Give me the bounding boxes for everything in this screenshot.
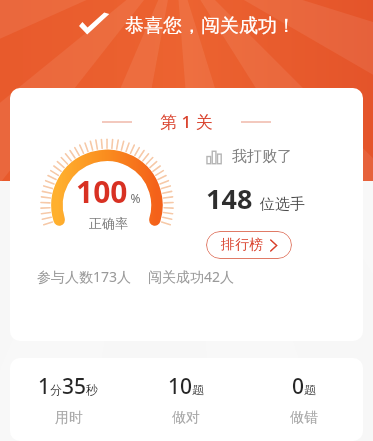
staticText: 做错 <box>290 409 318 427</box>
staticText: 0题 <box>292 372 317 401</box>
button[interactable]: 1分35秒 <box>10 372 127 427</box>
staticText: 用时 <box>55 409 83 427</box>
button[interactable]: 10题 <box>127 372 245 427</box>
button[interactable]: 排行榜 <box>206 231 292 259</box>
staticText: 做对 <box>172 409 200 427</box>
staticText: 100 % <box>76 171 141 212</box>
staticText: 我打败了 <box>232 147 292 166</box>
staticText: 正确率 <box>89 215 128 231</box>
staticText: 排行榜 <box>221 236 263 254</box>
button[interactable]: 0题 <box>245 372 363 427</box>
staticText: 148 <box>206 180 253 217</box>
staticText: 闯关成功42人 <box>148 267 235 286</box>
staticText: 恭喜您，闯关成功！ <box>125 14 296 38</box>
staticText: 位选手 <box>260 195 305 214</box>
staticText: 10题 <box>168 372 205 401</box>
staticText: 参与人数173人 <box>37 267 132 286</box>
staticText: 第 1 关 <box>160 110 213 133</box>
staticText: 1分35秒 <box>38 372 99 401</box>
